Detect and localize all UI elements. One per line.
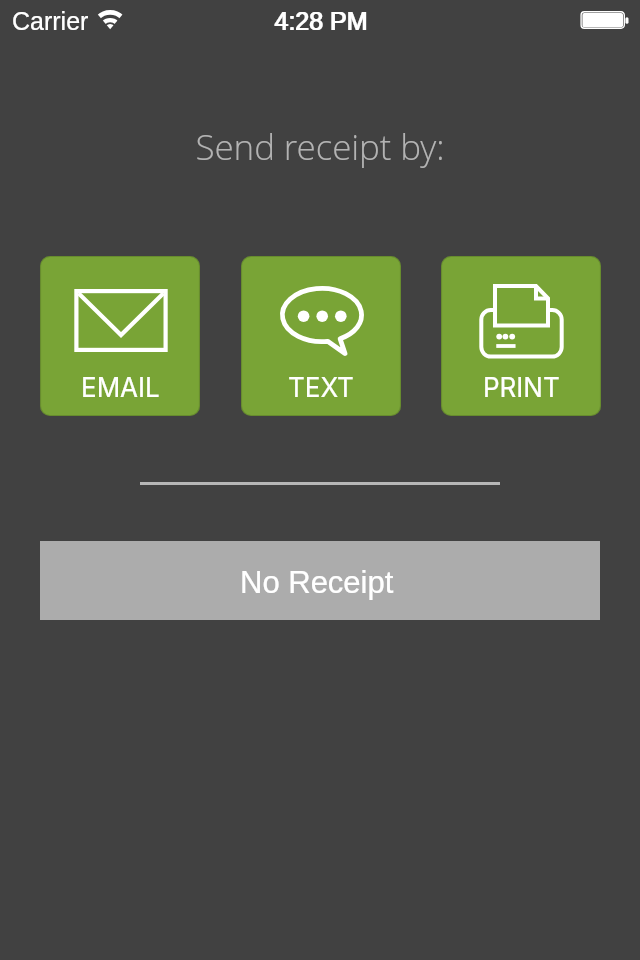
other: Battery full xyxy=(578,9,632,33)
button[interactable]: Send receipt by email xyxy=(40,256,200,416)
button[interactable]: Send receipt by text xyxy=(241,256,401,416)
staticText: No Receipt xyxy=(240,565,394,600)
staticText: TEXT xyxy=(288,372,354,403)
button[interactable]: No Receipt xyxy=(40,541,600,620)
other: Wi-Fi signal xyxy=(97,6,127,32)
staticText: PRINT xyxy=(483,372,560,403)
staticText: EMAIL xyxy=(81,372,160,403)
button[interactable]: Print receipt xyxy=(441,256,601,416)
staticText: Carrier xyxy=(12,7,89,35)
staticText: 4:28 PM xyxy=(275,7,369,35)
staticText: Send receipt by: xyxy=(0,123,640,171)
staticText: 4:28 PM xyxy=(274,7,368,35)
